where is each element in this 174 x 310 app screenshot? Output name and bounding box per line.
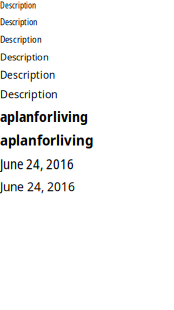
staticText: aplanforliving [0, 131, 93, 149]
staticText: Description [0, 0, 36, 11]
staticText: June 24, 2016 [0, 178, 75, 195]
staticText: Description [0, 68, 55, 82]
staticText: aplanforliving [0, 106, 88, 126]
staticText: Description [0, 33, 42, 45]
staticText: June 24, 2016 [0, 154, 74, 173]
staticText: Description [0, 87, 58, 101]
staticText: Description [0, 50, 49, 63]
staticText: Description [0, 16, 37, 28]
